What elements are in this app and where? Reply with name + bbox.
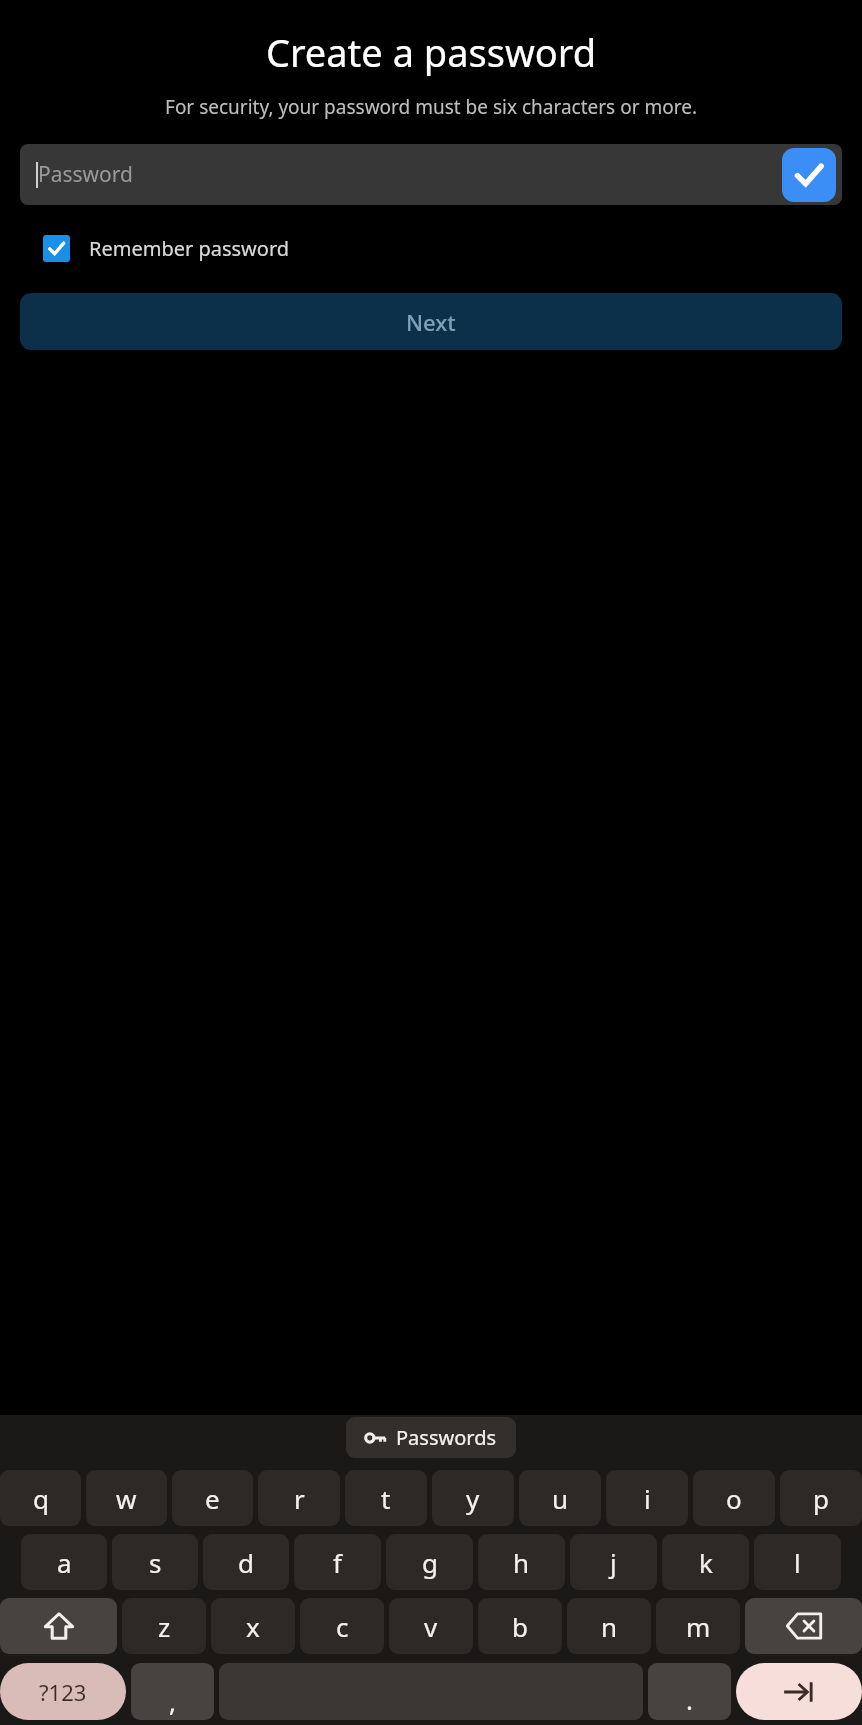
- button[interactable]: p: [780, 1470, 862, 1526]
- button[interactable]: z: [122, 1598, 206, 1654]
- staticText: r: [294, 1481, 305, 1516]
- staticText: x: [246, 1609, 260, 1644]
- button[interactable]: Password: [20, 144, 842, 205]
- button[interactable]: Backspace: [745, 1598, 862, 1654]
- button[interactable]: .: [648, 1663, 731, 1720]
- staticText: d: [238, 1545, 254, 1580]
- button[interactable]: h: [478, 1534, 565, 1590]
- staticText: z: [158, 1609, 171, 1644]
- staticText: o: [726, 1481, 742, 1516]
- button[interactable]: j: [570, 1534, 657, 1590]
- button[interactable]: n: [567, 1598, 651, 1654]
- button[interactable]: d: [203, 1534, 289, 1590]
- staticText: Remember password: [89, 235, 290, 262]
- button[interactable]: Shift: [0, 1598, 117, 1654]
- button[interactable]: k: [662, 1534, 749, 1590]
- staticText: Next: [406, 307, 456, 337]
- button[interactable]: v: [389, 1598, 473, 1654]
- button[interactable]: u: [519, 1470, 601, 1526]
- staticText: Password: [38, 160, 133, 189]
- button[interactable]: o: [693, 1470, 775, 1526]
- staticText: u: [552, 1481, 569, 1516]
- button[interactable]: w: [86, 1470, 167, 1526]
- staticText: ,: [169, 1684, 176, 1719]
- staticText: l: [794, 1545, 801, 1580]
- staticText: p: [813, 1481, 829, 1516]
- staticText: n: [601, 1609, 618, 1644]
- staticText: a: [57, 1545, 72, 1580]
- staticText: For security, your password must be six …: [40, 94, 822, 120]
- staticText: Create a password: [16, 26, 846, 78]
- button[interactable]: Confirm password: [782, 148, 836, 202]
- button[interactable]: r: [258, 1470, 340, 1526]
- button[interactable]: q: [0, 1470, 81, 1526]
- staticText: v: [424, 1609, 438, 1644]
- staticText: i: [644, 1481, 651, 1516]
- button[interactable]: m: [656, 1598, 740, 1654]
- button[interactable]: Enter: [736, 1663, 862, 1720]
- button[interactable]: g: [386, 1534, 473, 1590]
- staticText: Passwords: [396, 1424, 497, 1451]
- button[interactable]: ?123: [0, 1663, 126, 1720]
- staticText: f: [333, 1545, 342, 1580]
- button[interactable]: s: [112, 1534, 198, 1590]
- staticText: b: [512, 1609, 528, 1644]
- staticText: .: [686, 1682, 693, 1717]
- staticText: c: [336, 1609, 349, 1644]
- button[interactable]: l: [754, 1534, 841, 1590]
- button[interactable]: a: [21, 1534, 107, 1590]
- button[interactable]: Next: [20, 293, 842, 350]
- button[interactable]: Remember password: [20, 224, 290, 272]
- staticText: q: [33, 1481, 49, 1516]
- staticText: g: [422, 1545, 438, 1580]
- staticText: w: [116, 1481, 137, 1516]
- staticText: j: [610, 1545, 617, 1580]
- button[interactable]: e: [172, 1470, 253, 1526]
- button[interactable]: y: [432, 1470, 514, 1526]
- button[interactable]: ,: [131, 1663, 214, 1720]
- button[interactable]: Passwords: [346, 1417, 516, 1458]
- staticText: k: [699, 1545, 713, 1580]
- staticText: t: [381, 1481, 391, 1516]
- staticText: s: [149, 1545, 162, 1580]
- staticText: m: [686, 1609, 711, 1644]
- button[interactable]: x: [211, 1598, 295, 1654]
- staticText: y: [466, 1481, 480, 1516]
- staticText: h: [513, 1545, 530, 1580]
- staticText: ?123: [39, 1677, 87, 1707]
- staticText: e: [205, 1481, 220, 1516]
- button[interactable]: t: [345, 1470, 427, 1526]
- button[interactable]: f: [294, 1534, 381, 1590]
- button[interactable]: c: [300, 1598, 384, 1654]
- button[interactable]: i: [606, 1470, 688, 1526]
- button[interactable]: b: [478, 1598, 562, 1654]
